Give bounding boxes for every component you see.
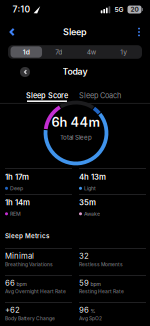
staticText: 1h 14m <box>5 198 30 207</box>
staticText: Total Sleep <box>60 134 92 141</box>
staticText: 7:10 <box>12 4 30 15</box>
button[interactable]: 1y <box>108 46 139 58</box>
staticText: 20 <box>130 6 138 13</box>
staticText: 1d <box>23 48 30 56</box>
staticText: 59 <box>79 278 89 288</box>
staticText: Sleep Metrics <box>5 232 49 240</box>
staticText: bpm <box>90 281 100 287</box>
staticText: Deep <box>10 185 23 191</box>
staticText: Sleep Score <box>26 91 68 100</box>
button[interactable]: More options <box>133 24 145 40</box>
button[interactable]: 7d <box>43 46 74 58</box>
button[interactable]: Previous day <box>20 67 30 77</box>
staticText: Avg SpO2 <box>79 315 102 321</box>
button[interactable]: 4w <box>76 46 107 58</box>
staticText: 5G <box>114 5 123 14</box>
staticText: 4w <box>87 48 96 56</box>
staticText: Today <box>62 66 87 77</box>
staticText: 66 <box>5 278 15 288</box>
staticText: Breathing Variations <box>5 261 53 267</box>
staticText: 32 <box>79 251 89 261</box>
staticText: REM <box>10 211 21 217</box>
staticText: 1y <box>120 48 127 56</box>
staticText: Minimal <box>5 251 34 261</box>
staticText: bpm <box>16 281 26 287</box>
staticText: Resting Heart Rate <box>79 288 124 294</box>
staticText: % <box>90 308 95 314</box>
button[interactable]: 1d <box>11 46 42 58</box>
staticText: 35m <box>79 198 96 207</box>
staticText: Avg Overnight Heart Rate <box>5 288 66 294</box>
staticText: Sleep <box>63 26 87 37</box>
staticText: 6h 44m <box>51 114 100 130</box>
button[interactable]: Sleep Coach <box>76 89 124 102</box>
staticText: 1h 17m <box>5 172 29 182</box>
button[interactable]: Back <box>4 23 18 40</box>
staticText: 96 <box>79 305 89 315</box>
staticText: Restless Moments <box>79 261 123 267</box>
staticText: Body Battery Change <box>5 315 55 321</box>
staticText: Light <box>84 185 96 191</box>
staticText: Sleep Coach <box>79 91 121 100</box>
staticText: 7d <box>55 48 62 56</box>
staticText: 4h 13m <box>79 172 106 182</box>
staticText: +62 <box>5 305 20 315</box>
button[interactable]: Sleep Score <box>23 89 71 102</box>
staticText: Awake <box>84 211 100 217</box>
